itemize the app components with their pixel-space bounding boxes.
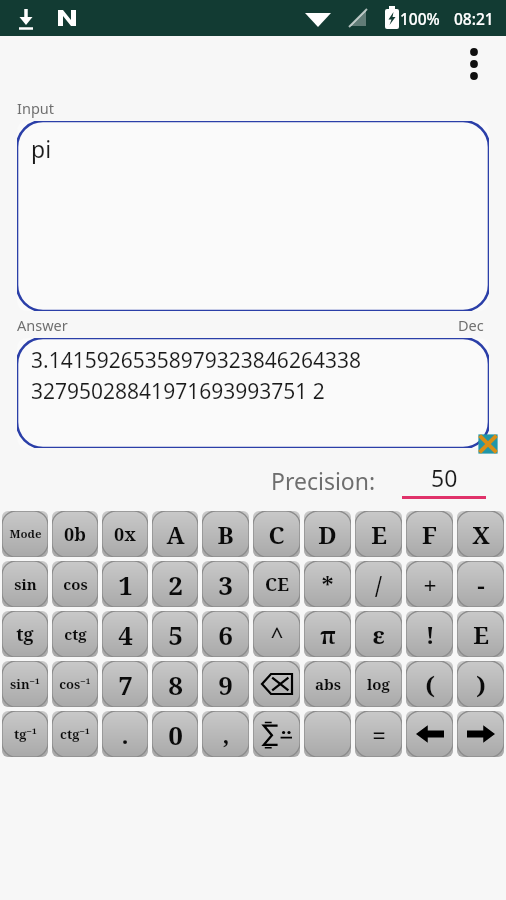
- button[interactable]: CE: [253, 561, 300, 607]
- staticText: cos⁻¹: [59, 675, 91, 693]
- staticText: Precision:: [271, 465, 376, 496]
- button[interactable]: tg⁻¹: [2, 711, 48, 757]
- staticText: cos: [63, 574, 88, 594]
- button[interactable]: ε: [355, 611, 402, 657]
- button[interactable]: 5: [152, 611, 198, 657]
- staticText: abs: [315, 674, 341, 694]
- button[interactable]: 9: [202, 661, 249, 707]
- staticText: (: [425, 668, 435, 701]
- button[interactable]: pi: [17, 121, 489, 311]
- button[interactable]: /: [355, 561, 402, 607]
- staticText: +: [423, 568, 437, 601]
- button[interactable]: 1: [102, 561, 148, 607]
- button[interactable]: 0b: [52, 511, 98, 557]
- button[interactable]: Mode: [2, 511, 48, 557]
- staticText: ε: [372, 618, 385, 651]
- button[interactable]: Move cursor right: [457, 711, 504, 757]
- staticText: sin⁻¹: [10, 675, 40, 693]
- button[interactable]: ,: [202, 711, 249, 757]
- staticText: Answer: [17, 315, 68, 335]
- staticText: 8: [168, 667, 183, 702]
- staticText: 7: [118, 667, 133, 702]
- button[interactable]: 3.14159265358979323846264338: [17, 338, 489, 448]
- staticText: 100%: [400, 8, 440, 29]
- staticText: Mode: [9, 526, 42, 542]
- button[interactable]: 2: [152, 561, 198, 607]
- staticText: X: [472, 518, 490, 551]
- button[interactable]: =: [355, 711, 402, 757]
- staticText: =: [372, 718, 386, 751]
- staticText: F: [422, 518, 437, 551]
- staticText: sin: [14, 574, 37, 594]
- staticText: ^: [270, 618, 284, 651]
- button[interactable]: C: [253, 511, 300, 557]
- button[interactable]: E: [457, 611, 504, 657]
- button[interactable]: (: [406, 661, 453, 707]
- staticText: 6: [218, 617, 233, 652]
- button[interactable]: 0x: [102, 511, 148, 557]
- button[interactable]: sin: [2, 561, 48, 607]
- staticText: .: [121, 718, 129, 751]
- button[interactable]: π: [304, 611, 351, 657]
- staticText: π: [320, 618, 336, 651]
- staticText: 50: [431, 462, 458, 493]
- button[interactable]: 7: [102, 661, 148, 707]
- staticText: ctg: [64, 624, 87, 644]
- button[interactable]: .: [102, 711, 148, 757]
- button[interactable]: E: [355, 511, 402, 557]
- staticText: 0b: [64, 522, 86, 547]
- button[interactable]: cos⁻¹: [52, 661, 98, 707]
- staticText: 1: [118, 567, 133, 602]
- staticText: D: [318, 518, 337, 551]
- button[interactable]: 4: [102, 611, 148, 657]
- button[interactable]: D: [304, 511, 351, 557]
- button[interactable]: A: [152, 511, 198, 557]
- button[interactable]: 50: [402, 462, 486, 499]
- button[interactable]: F: [406, 511, 453, 557]
- button[interactable]: ctg: [52, 611, 98, 657]
- staticText: ctg⁻¹: [60, 725, 90, 743]
- button[interactable]: cos: [52, 561, 98, 607]
- staticText: ): [476, 668, 486, 701]
- staticText: 9: [218, 667, 233, 702]
- button[interactable]: B: [202, 511, 249, 557]
- button[interactable]: abs: [304, 661, 351, 707]
- button[interactable]: Resize answer field: [476, 432, 500, 456]
- staticText: Input: [17, 98, 54, 118]
- staticText: /: [375, 568, 382, 601]
- staticText: -: [477, 568, 485, 601]
- button[interactable]: More options: [452, 42, 496, 86]
- staticText: 3.14159265358979323846264338: [31, 346, 361, 375]
- button[interactable]: 0: [152, 711, 198, 757]
- staticText: pi: [31, 133, 52, 164]
- staticText: 0x: [114, 522, 136, 547]
- button[interactable]: 8: [152, 661, 198, 707]
- button[interactable]: +: [406, 561, 453, 607]
- button[interactable]: 3: [202, 561, 249, 607]
- staticText: ,: [222, 718, 230, 751]
- staticText: 3: [218, 567, 233, 602]
- button[interactable]: ctg⁻¹: [52, 711, 98, 757]
- staticText: !: [425, 618, 435, 651]
- button[interactable]: [304, 711, 351, 757]
- staticText: log: [367, 674, 390, 694]
- staticText: 4: [118, 617, 133, 652]
- button[interactable]: 6: [202, 611, 249, 657]
- button[interactable]: *: [304, 561, 351, 607]
- button[interactable]: tg: [2, 611, 48, 657]
- staticText: 0: [168, 717, 183, 752]
- button[interactable]: -: [457, 561, 504, 607]
- button[interactable]: !: [406, 611, 453, 657]
- button[interactable]: Sum of f(x): [253, 711, 300, 757]
- button[interactable]: ^: [253, 611, 300, 657]
- staticText: CE: [265, 572, 289, 597]
- staticText: C: [268, 518, 285, 551]
- staticText: 08:21: [454, 8, 494, 29]
- button[interactable]: Move cursor left: [406, 711, 453, 757]
- staticText: B: [217, 518, 234, 551]
- button[interactable]: ): [457, 661, 504, 707]
- button[interactable]: Backspace: [253, 661, 300, 707]
- button[interactable]: log: [355, 661, 402, 707]
- button[interactable]: sin⁻¹: [2, 661, 48, 707]
- button[interactable]: X: [457, 511, 504, 557]
